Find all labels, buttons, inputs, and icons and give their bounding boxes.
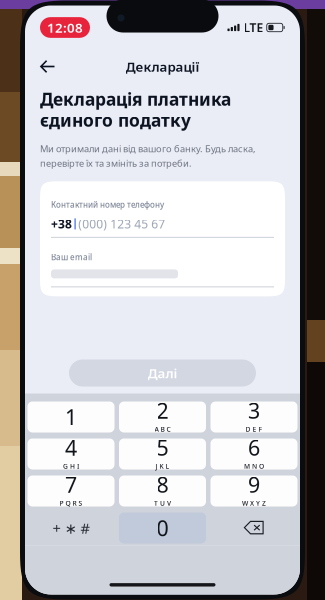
staticText: T U V: [154, 499, 171, 508]
button[interactable]: 2: [119, 401, 206, 432]
staticText: 0: [156, 514, 168, 542]
button[interactable]: Back: [40, 58, 55, 74]
staticText: M N O: [244, 462, 264, 471]
staticText: +38: [51, 216, 72, 232]
staticText: 12:08: [47, 19, 83, 36]
staticText: G H I: [63, 462, 79, 471]
button[interactable]: 6: [210, 438, 297, 469]
staticText: перевірте їх та змініть за потреби.: [40, 157, 192, 169]
button[interactable]: 9: [210, 475, 297, 506]
staticText: 9: [248, 470, 260, 499]
button[interactable]: 8: [119, 475, 206, 506]
staticText: Далі: [147, 364, 177, 382]
button[interactable]: Delete: [210, 512, 297, 543]
staticText: W X Y Z: [242, 499, 266, 508]
button[interactable]: + ∗ #: [27, 512, 114, 543]
button[interactable]: 7: [27, 475, 114, 506]
staticText: Декларація платника: [40, 87, 231, 110]
staticText: 2: [156, 396, 168, 425]
staticText: Ми отримали дані від вашого банку. Будь …: [40, 142, 256, 155]
staticText: 8: [156, 470, 168, 499]
staticText: єдиного податку: [40, 108, 191, 131]
staticText: 4: [65, 433, 77, 462]
staticText: A B C: [154, 425, 170, 434]
staticText: 1: [65, 403, 77, 431]
staticText: 3: [248, 396, 260, 425]
staticText: LTE: [243, 19, 263, 35]
staticText: 6: [248, 433, 260, 462]
staticText: Декларації: [125, 58, 199, 75]
button[interactable]: Далі: [69, 359, 256, 386]
button[interactable]: 0: [119, 512, 206, 543]
staticText: J K L: [155, 462, 169, 471]
button[interactable]: 1: [27, 401, 114, 432]
staticText: Контактний номер телефону: [51, 199, 164, 210]
staticText: 5: [156, 433, 168, 462]
staticText: + ∗ #: [52, 518, 89, 538]
staticText: (000) 123 45 67: [78, 216, 165, 232]
staticText: 7: [65, 470, 77, 499]
staticText: D E F: [245, 425, 262, 434]
button[interactable]: 5: [119, 438, 206, 469]
button[interactable]: 4: [27, 438, 114, 469]
staticText: P Q R S: [59, 499, 82, 508]
staticText: Ваш email: [51, 252, 92, 262]
button[interactable]: 3: [210, 401, 297, 432]
